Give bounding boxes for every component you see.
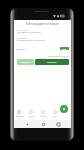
button[interactable]: Kunden: [37, 110, 49, 117]
staticText: Aufträge: [28, 115, 35, 117]
button[interactable]: Aufträge: [25, 110, 37, 117]
staticText: Mehr: [53, 115, 57, 117]
staticText: Fahrzeug 37 eingeben: [17, 31, 42, 34]
button[interactable]: ABBRECHEN: [17, 59, 34, 65]
button[interactable]: Home: [40, 121, 46, 127]
staticText: * Pflichtfelder ausfüllen: [17, 55, 69, 58]
button[interactable]: Mehr: [49, 110, 61, 117]
staticText: Kennzeichen: [17, 29, 28, 31]
button[interactable]: Start: [60, 47, 69, 50]
button[interactable]: SPEICHERN: [35, 59, 69, 65]
staticText: Kunden: [40, 115, 46, 117]
button[interactable]: Back: [24, 121, 30, 127]
staticText: Fahrzeug: [16, 115, 23, 117]
staticText: SPEICHERN: [47, 61, 57, 63]
button[interactable]: Fahrzeug: [13, 110, 25, 117]
staticText: Fahrzeugdaten erfassen: [14, 22, 71, 26]
staticText: Beginn: [17, 47, 25, 50]
button[interactable]: Recents: [55, 121, 61, 127]
staticText: Landwirtschaftl. Maschine: [17, 39, 46, 42]
staticText: Start: [62, 48, 67, 50]
button[interactable]: Add: [60, 105, 68, 113]
staticText: ABBRECHEN: [20, 61, 31, 63]
staticText: Fahrzeugtyp: [17, 37, 28, 39]
